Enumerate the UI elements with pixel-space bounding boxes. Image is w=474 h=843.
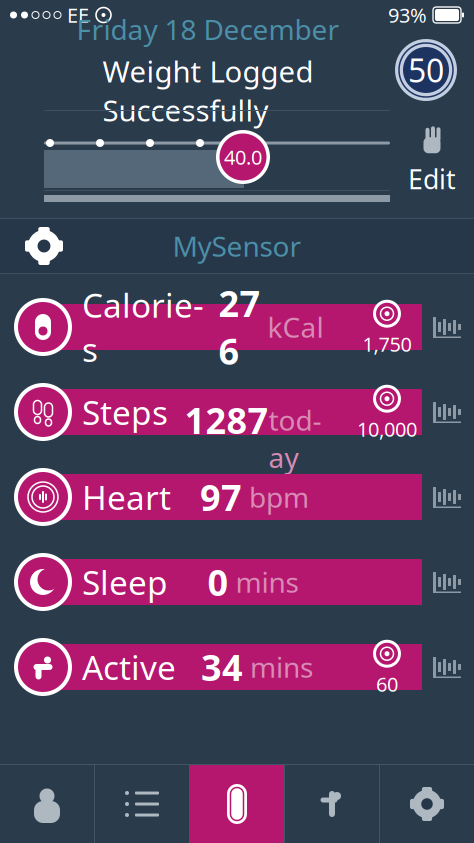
staticText: 97 bbox=[200, 473, 242, 521]
button[interactable]: Settings bbox=[380, 765, 474, 843]
button[interactable]: Settings bbox=[14, 218, 74, 274]
staticText: 34 bbox=[201, 643, 243, 691]
staticText: Active bbox=[82, 645, 176, 689]
staticText: 50 bbox=[408, 49, 444, 91]
staticText: 93% bbox=[388, 2, 427, 28]
staticText: MySensor bbox=[172, 227, 301, 265]
staticText: 60 bbox=[376, 671, 398, 697]
button[interactable]: Calories bbox=[0, 296, 474, 358]
staticText: Edit bbox=[408, 161, 456, 197]
staticText: Sleep bbox=[82, 560, 168, 604]
staticText: Heart bbox=[82, 475, 171, 519]
button[interactable]: List bbox=[95, 765, 189, 843]
staticText: Weight Logged Successfully bbox=[102, 52, 313, 129]
button[interactable]: Sensor bbox=[190, 765, 284, 843]
staticText: 0 bbox=[207, 558, 228, 606]
button[interactable]: Edit bbox=[390, 117, 474, 203]
staticText: Calories bbox=[82, 283, 204, 371]
staticText: 1,750 bbox=[362, 331, 411, 357]
staticText: 10,000 bbox=[357, 416, 417, 442]
staticText: mins bbox=[228, 563, 298, 601]
button[interactable]: Heart bbox=[0, 466, 474, 528]
staticText: bpm bbox=[242, 478, 309, 516]
staticText: 40.0 bbox=[224, 144, 262, 170]
button[interactable]: Achievement score 50 bbox=[392, 36, 460, 104]
button[interactable]: Profile bbox=[0, 765, 94, 843]
button[interactable]: Workout bbox=[285, 765, 379, 843]
staticText: 276 bbox=[218, 279, 260, 375]
button[interactable]: Sleep bbox=[0, 551, 474, 613]
staticText: EE bbox=[67, 2, 89, 28]
staticText: mins bbox=[243, 648, 313, 686]
button[interactable]: Steps bbox=[0, 381, 474, 443]
staticText: Friday 18 December bbox=[76, 10, 339, 48]
staticText: today bbox=[268, 364, 321, 476]
button[interactable]: Active bbox=[0, 636, 474, 698]
staticText: 1287 bbox=[184, 396, 268, 444]
staticText: kCal bbox=[260, 308, 323, 346]
staticText: Steps bbox=[82, 390, 168, 434]
